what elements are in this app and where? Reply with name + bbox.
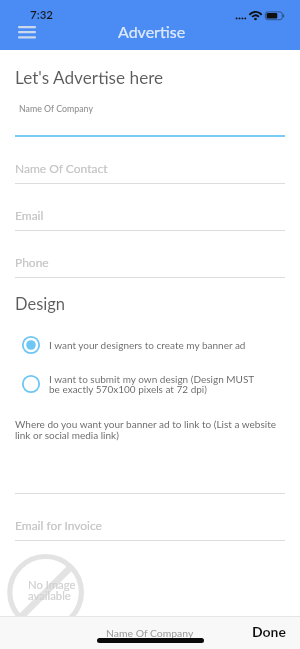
staticText: Name Of Company [19, 103, 93, 114]
staticText: Advertise [118, 22, 186, 41]
staticText: I want your designers to create my banne… [49, 339, 246, 351]
staticText: Email for Invoice [15, 518, 102, 532]
button[interactable] [0, 146, 300, 193]
staticText: I want to submit my own design (Design M… [49, 373, 261, 395]
staticText: Email [15, 208, 44, 222]
button[interactable] [0, 494, 300, 541]
button[interactable]: I want to submit my own design (Design M… [0, 372, 300, 395]
button[interactable] [0, 193, 300, 240]
staticText: Done [252, 623, 286, 640]
button[interactable]: Name Of Company [0, 100, 300, 136]
staticText: No Image [28, 578, 76, 592]
staticText: Design [15, 294, 66, 314]
staticText: Where do you want your banner ad to link… [15, 418, 283, 441]
button[interactable] [0, 240, 300, 287]
button[interactable]: Menu [10, 18, 44, 46]
staticText: Phone [15, 255, 49, 269]
staticText: Name Of Contact [15, 161, 108, 175]
staticText: available [28, 589, 71, 603]
button[interactable]: Done [238, 616, 300, 647]
staticText: Let's Advertise here [15, 67, 164, 88]
staticText: Name Of Company [106, 627, 194, 639]
staticText: 7:32 [30, 8, 53, 22]
button[interactable]: I want your designers to create my banne… [0, 333, 300, 356]
